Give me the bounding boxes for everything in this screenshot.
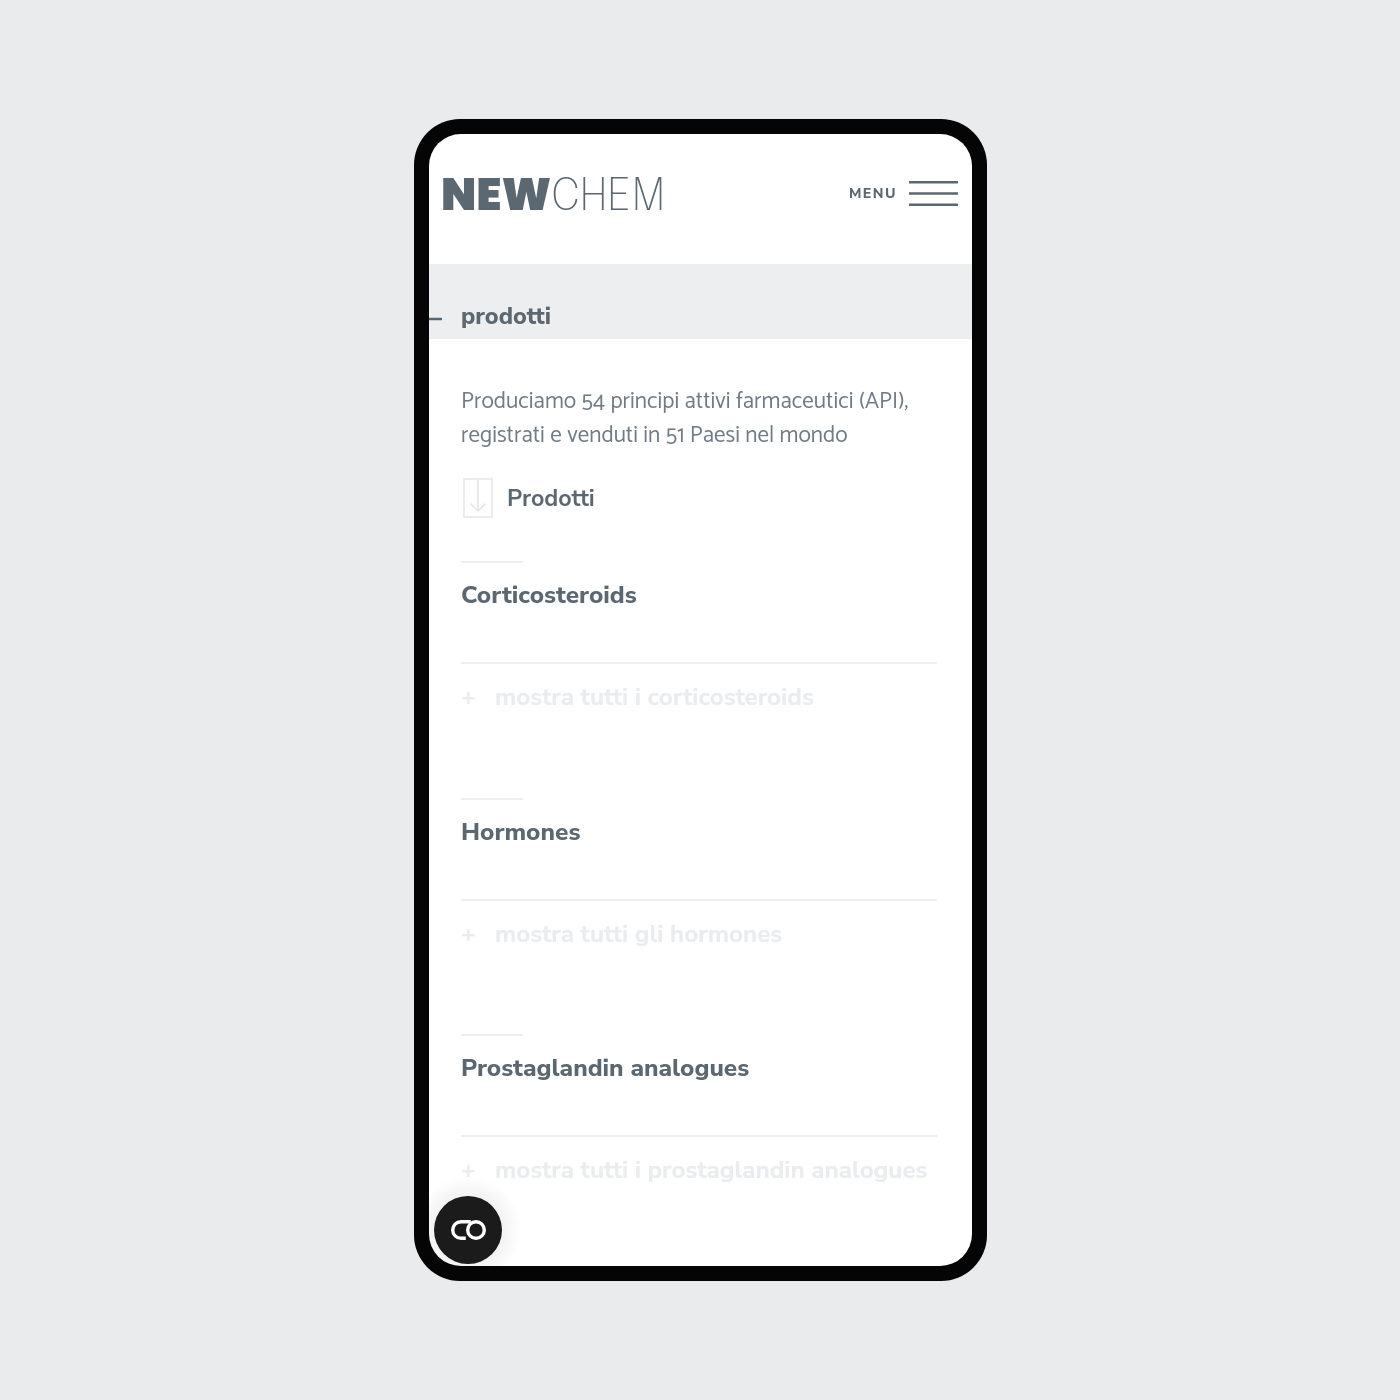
button[interactable]: + xyxy=(461,680,814,713)
staticText: + xyxy=(461,1153,476,1186)
staticText: prodotti xyxy=(461,300,552,332)
staticText: Produciamo 54 principi attivi farmaceuti… xyxy=(461,383,909,421)
staticText: registrati e venduti in 51 Paesi nel mon… xyxy=(461,417,848,455)
button[interactable]: + xyxy=(461,1153,928,1186)
button[interactable]: Prodotti xyxy=(464,479,595,517)
staticText: Prostaglandin analogues xyxy=(461,1051,750,1084)
staticText: mostra tutti gli hormones xyxy=(495,917,783,950)
button[interactable]: Cookie preferences xyxy=(434,1196,502,1264)
button[interactable]: NEWCHEM xyxy=(441,162,666,225)
staticText: Prodotti xyxy=(507,482,595,514)
staticText: + xyxy=(461,917,476,950)
staticText: mostra tutti i prostaglandin analogues xyxy=(495,1153,928,1186)
staticText: mostra tutti i corticosteroids xyxy=(495,680,814,713)
button[interactable]: + xyxy=(461,917,783,950)
staticText: MENU xyxy=(849,184,897,203)
staticText: Hormones xyxy=(461,815,581,848)
button[interactable]: MENU xyxy=(849,169,958,218)
staticText: Corticosteroids xyxy=(461,578,637,611)
staticText: + xyxy=(461,680,476,713)
button[interactable]: prodotti xyxy=(429,264,972,339)
